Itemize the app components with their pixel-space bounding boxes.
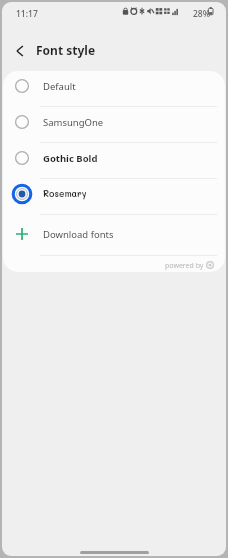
staticText: powered by	[165, 261, 204, 271]
staticText: Default	[43, 80, 76, 93]
button[interactable]: Gothic Bold	[3, 143, 225, 179]
staticText: 11:17	[16, 8, 38, 20]
button[interactable]: Default	[3, 71, 225, 107]
button[interactable]: Download fonts	[3, 215, 225, 256]
staticText: SamsungOne	[43, 116, 104, 129]
staticText: Font style	[36, 42, 96, 58]
staticText: Download fonts	[43, 228, 114, 241]
staticText: Gothic Bold	[43, 152, 98, 165]
button[interactable]: Back	[8, 39, 32, 63]
button[interactable]: Rosemary	[3, 179, 225, 215]
button[interactable]: SamsungOne	[3, 107, 225, 143]
staticText: Rosemary	[43, 188, 87, 200]
staticText: 28%	[193, 8, 210, 20]
